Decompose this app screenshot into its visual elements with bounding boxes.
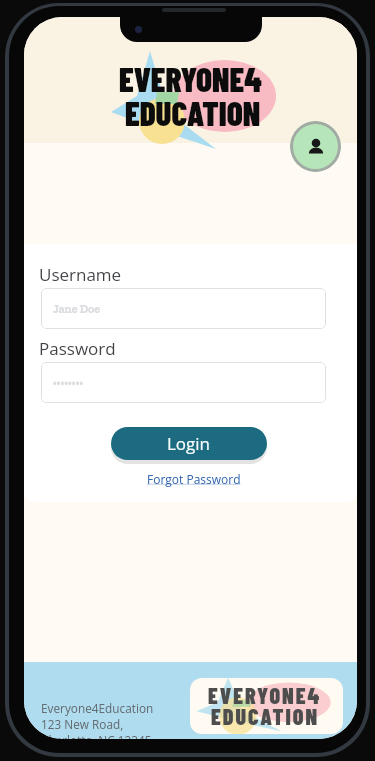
staticText: EDUCATION xyxy=(125,93,261,133)
button[interactable]: Jane Doe xyxy=(41,288,326,329)
staticText: 123 New Road, xyxy=(41,716,124,732)
staticText: Forgot Password xyxy=(147,471,241,487)
staticText: Username xyxy=(39,263,122,281)
staticText: Password xyxy=(39,337,116,355)
button[interactable]: •••••••• xyxy=(41,362,326,403)
staticText: Everyone4Education xyxy=(41,700,154,716)
staticText: Charlotte, NC 12345 xyxy=(41,732,152,739)
staticText: EVERYONE4 xyxy=(119,59,262,99)
button[interactable]: Login xyxy=(111,427,267,460)
staticText: Login xyxy=(167,432,211,455)
button[interactable]: Account xyxy=(290,121,341,172)
staticText: EDUCATION xyxy=(211,703,320,729)
staticText: Jane Doe xyxy=(53,302,101,316)
staticText: •••••••• xyxy=(53,376,84,390)
staticText: EVERYONE4 xyxy=(208,682,322,708)
button[interactable]: Forgot Password xyxy=(147,471,241,487)
